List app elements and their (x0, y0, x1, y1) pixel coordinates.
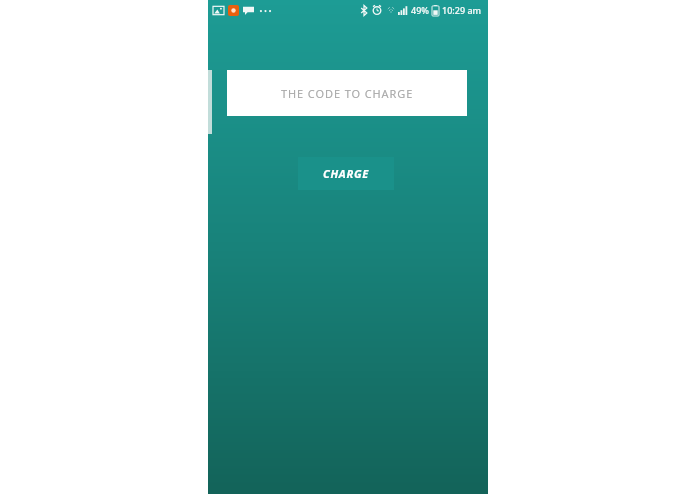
staticText: THE CODE TO CHARGE (281, 86, 414, 101)
button[interactable]: CHARGE (298, 157, 394, 190)
staticText: 10:29 am (442, 4, 482, 16)
staticText: 49% (411, 4, 429, 16)
staticText: CHARGE (323, 166, 369, 181)
button[interactable]: THE CODE TO CHARGE (227, 70, 467, 116)
